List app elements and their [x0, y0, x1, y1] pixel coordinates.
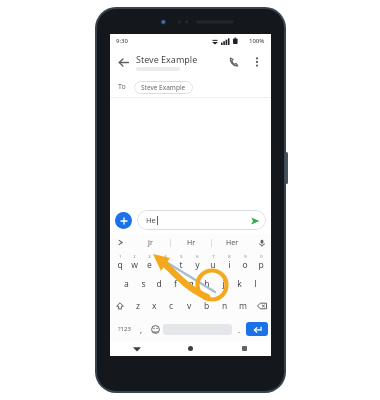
staticText: Her — [226, 238, 239, 248]
staticText: 1 — [119, 254, 122, 259]
staticText: 100% — [249, 37, 265, 45]
button[interactable]: , — [135, 319, 147, 339]
button[interactable]: Steve Example — [134, 81, 193, 94]
button[interactable]: v — [180, 295, 198, 317]
staticText: , — [140, 324, 143, 335]
staticText: w — [131, 259, 138, 271]
button[interactable]: s — [135, 273, 151, 295]
staticText: v — [187, 300, 192, 312]
button[interactable]: Add attachment — [115, 212, 132, 229]
button[interactable]: Backspace — [252, 295, 271, 317]
staticText: k — [237, 278, 242, 290]
button[interactable]: 2 — [127, 251, 142, 273]
staticText: 6 — [196, 254, 199, 259]
button[interactable]: Home — [163, 341, 217, 356]
staticText: p — [258, 259, 264, 271]
button[interactable]: m — [234, 295, 252, 317]
staticText: c — [169, 300, 174, 312]
button[interactable]: Shift — [110, 295, 129, 317]
staticText: i — [228, 259, 231, 271]
staticText: t — [179, 259, 183, 271]
button[interactable]: Expand suggestions — [110, 234, 130, 251]
button[interactable]: Enter — [246, 322, 268, 336]
staticText: . — [238, 324, 241, 335]
staticText: n — [222, 300, 228, 312]
staticText: m — [239, 300, 247, 312]
staticText: 9 — [244, 254, 247, 259]
button[interactable]: h — [199, 273, 215, 295]
staticText: x — [152, 300, 157, 312]
staticText: q — [117, 259, 123, 271]
button[interactable]: Send — [248, 214, 261, 227]
button[interactable]: Call — [222, 50, 246, 74]
staticText: z — [136, 300, 140, 312]
staticText: 5 — [180, 254, 183, 259]
button[interactable]: f — [167, 273, 183, 295]
button[interactable]: He — [137, 210, 266, 230]
button[interactable]: x — [146, 295, 163, 317]
staticText: Jr — [148, 238, 153, 248]
button[interactable]: 0 — [253, 251, 269, 273]
staticText: 8 — [228, 254, 231, 259]
staticText: 2 — [133, 254, 136, 259]
button[interactable]: Recent apps — [217, 341, 271, 356]
button[interactable]: c — [163, 295, 180, 317]
staticText: 4 — [164, 254, 167, 259]
staticText: b — [204, 300, 210, 312]
button[interactable]: More options — [246, 51, 268, 73]
button[interactable]: Back — [110, 49, 136, 75]
button[interactable]: 9 — [237, 251, 253, 273]
staticText: u — [210, 259, 216, 271]
staticText: a — [124, 278, 129, 290]
button[interactable]: 3 — [142, 251, 157, 273]
button[interactable]: k — [231, 273, 247, 295]
button[interactable]: Hr — [171, 234, 211, 251]
staticText: l — [254, 278, 257, 290]
button[interactable]: 7 — [205, 251, 221, 273]
staticText: y — [195, 259, 200, 271]
staticText: f — [174, 278, 177, 290]
button[interactable]: g — [183, 273, 199, 295]
button[interactable]: a — [118, 273, 135, 295]
staticText: o — [242, 259, 248, 271]
staticText: s — [141, 278, 146, 290]
button[interactable]: b — [198, 295, 216, 317]
staticText: ?123 — [118, 325, 131, 333]
staticText: Steve Example — [141, 83, 186, 92]
staticText: g — [188, 278, 194, 290]
button[interactable]: n — [216, 295, 234, 317]
button[interactable]: z — [129, 295, 146, 317]
staticText: 7 — [212, 254, 215, 259]
button[interactable]: 6 — [189, 251, 205, 273]
button[interactable]: Emoji — [147, 319, 163, 339]
button[interactable]: d — [151, 273, 167, 295]
button[interactable]: l — [247, 273, 263, 295]
button[interactable]: Hide keyboard — [110, 341, 163, 356]
staticText: e — [147, 259, 152, 271]
staticText: 0 — [260, 254, 263, 259]
staticText: h — [204, 278, 210, 290]
staticText: He — [146, 215, 156, 225]
button[interactable]: 5 — [173, 251, 189, 273]
button[interactable]: 4 — [157, 251, 173, 273]
staticText: d — [156, 278, 162, 290]
staticText: Steve Example — [136, 53, 198, 65]
staticText: j — [222, 278, 225, 290]
button[interactable]: j — [215, 273, 231, 295]
button[interactable]: Voice input — [252, 234, 271, 251]
button[interactable]: . — [232, 319, 246, 339]
button[interactable]: 8 — [221, 251, 237, 273]
staticText: Hr — [187, 238, 196, 248]
button[interactable]: 1 — [112, 251, 127, 273]
staticText: 3 — [148, 254, 151, 259]
staticText: To — [118, 82, 126, 92]
button[interactable]: Jr — [130, 234, 170, 251]
staticText: r — [163, 259, 167, 271]
button[interactable]: Her — [212, 234, 252, 251]
staticText: 9:30 — [116, 37, 128, 45]
button[interactable]: ?123 — [113, 319, 135, 339]
